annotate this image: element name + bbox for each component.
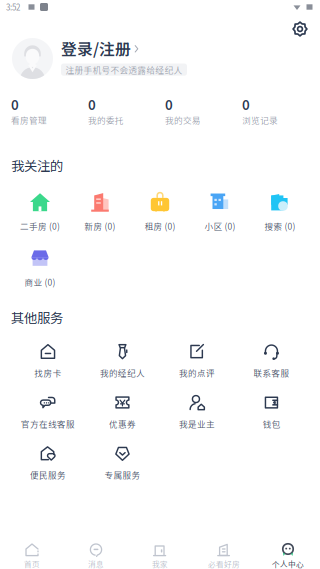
button[interactable]: 新房 (0) <box>70 192 130 232</box>
staticText: 官方在线客服 <box>21 418 75 430</box>
button[interactable]: 0 <box>242 94 319 126</box>
staticText: 首页 <box>24 558 40 569</box>
staticText: 我的交易 <box>165 114 201 126</box>
staticText: 看房管理 <box>11 114 47 126</box>
staticText: 必看好房 <box>208 558 240 569</box>
button[interactable]: 专属服务 <box>85 446 160 480</box>
staticText: 消息 <box>88 558 104 569</box>
button[interactable]: 个人中心 <box>256 542 320 569</box>
button[interactable]: 消息 <box>64 542 128 569</box>
staticText: 我关注的 <box>11 155 63 175</box>
staticText: 新房 (0) <box>84 220 115 232</box>
button[interactable]: 我的经纪人 <box>85 344 160 378</box>
button[interactable]: 0 <box>11 94 88 126</box>
button[interactable]: 我家 <box>128 542 192 569</box>
button[interactable]: 头像 <box>12 38 53 79</box>
button[interactable]: 优惠券 <box>85 395 160 429</box>
staticText: 我的委托 <box>88 114 124 126</box>
staticText: 0 <box>165 94 173 114</box>
staticText: 注册手机号不会透露给经纪人 <box>65 63 182 76</box>
staticText: 我的经纪人 <box>100 367 145 379</box>
staticText: 我的点评 <box>179 367 215 379</box>
button[interactable]: 设置 <box>291 20 309 38</box>
button[interactable]: 商业 (0) <box>10 248 70 288</box>
staticText: 我家 <box>152 558 168 569</box>
button[interactable]: 0 <box>88 94 165 126</box>
button[interactable]: 便民服务 <box>11 446 85 480</box>
staticText: 找房卡 <box>34 367 61 379</box>
staticText: 联系客服 <box>253 367 289 379</box>
button[interactable]: 0 <box>165 94 242 126</box>
button[interactable]: 联系客服 <box>234 344 309 378</box>
button[interactable]: 我是业主 <box>160 395 234 429</box>
button[interactable]: 必看好房 <box>192 542 256 569</box>
button[interactable]: 首页 <box>0 542 64 569</box>
button[interactable]: 搜索 (0) <box>250 192 310 232</box>
staticText: 小区 (0) <box>204 220 235 232</box>
staticText: 浏览记录 <box>242 114 278 126</box>
button[interactable]: 我的点评 <box>160 344 234 378</box>
button[interactable]: 找房卡 <box>11 344 85 378</box>
staticText: 0 <box>88 94 96 114</box>
staticText: 0 <box>242 94 250 114</box>
button[interactable]: 钱包 <box>234 395 309 429</box>
staticText: 商业 (0) <box>24 276 55 288</box>
staticText: 3:52 <box>6 1 20 13</box>
staticText: 登录/注册 <box>61 37 131 60</box>
button[interactable]: 二手房 (0) <box>10 192 70 232</box>
button[interactable]: 登录/注册 <box>61 39 191 79</box>
staticText: 0 <box>11 94 19 114</box>
staticText: 二手房 (0) <box>20 220 60 232</box>
staticText: 专属服务 <box>104 469 140 481</box>
staticText: 钱包 <box>262 418 280 430</box>
staticText: 其他服务 <box>11 307 63 327</box>
button[interactable]: 租房 (0) <box>130 192 190 232</box>
staticText: 我是业主 <box>179 418 215 430</box>
staticText: 搜索 (0) <box>264 220 295 232</box>
button[interactable]: 官方在线客服 <box>11 395 85 429</box>
staticText: 租房 (0) <box>144 220 175 232</box>
staticText: 便民服务 <box>30 469 66 481</box>
button[interactable]: 小区 (0) <box>190 192 250 232</box>
staticText: 个人中心 <box>272 558 304 569</box>
staticText: 优惠券 <box>109 418 136 430</box>
